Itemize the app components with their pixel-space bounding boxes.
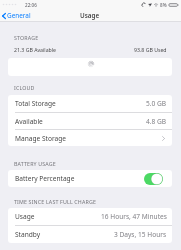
staticText: STORAGE	[14, 34, 39, 41]
button[interactable]: Battery Percentage toggle	[144, 173, 163, 185]
staticText: ICLOUD	[14, 84, 35, 91]
button[interactable]: Total Storage	[8, 95, 172, 112]
staticText: 5.0 GB	[146, 99, 167, 108]
staticText: Usage	[80, 11, 100, 20]
staticText: 22:06	[25, 2, 37, 8]
staticText: Available	[15, 117, 43, 126]
staticText: 93.8 GB Used	[134, 46, 167, 53]
staticText: Standby	[15, 230, 41, 239]
button[interactable]: Available	[8, 113, 172, 129]
button[interactable]: Usage	[8, 208, 172, 225]
staticText: 21.3 GB Available	[14, 46, 57, 53]
staticText: General	[7, 11, 31, 20]
staticText: 8%	[160, 2, 167, 8]
staticText: 16 Hours, 47 Minutes	[101, 212, 167, 221]
staticText: BATTERY USAGE	[14, 160, 56, 167]
button[interactable]: General	[0, 11, 31, 20]
staticText: Battery Percentage	[15, 174, 75, 183]
staticText: Usage	[15, 212, 35, 221]
button[interactable]: Manage Storage	[8, 130, 172, 146]
staticText: TIME SINCE LAST FULL CHARGE	[14, 198, 97, 205]
staticText: Total Storage	[15, 99, 56, 108]
button[interactable]: Battery Percentage	[8, 170, 172, 187]
staticText: 4.8 GB	[146, 117, 167, 126]
staticText: Manage Storage	[15, 134, 66, 143]
button[interactable]: Standby	[8, 226, 172, 243]
staticText: 3 Days, 15 Hours	[114, 230, 167, 239]
